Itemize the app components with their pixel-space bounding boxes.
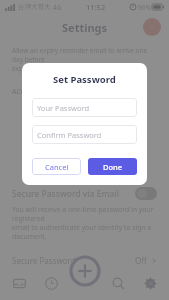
button[interactable]: Cancel xyxy=(32,158,81,175)
staticText: Secure Password via Email xyxy=(12,188,119,200)
staticText: 96% xyxy=(138,3,151,12)
button[interactable]: Done xyxy=(88,158,137,175)
button[interactable]: Profile xyxy=(143,18,161,36)
staticText: Done xyxy=(103,162,123,172)
staticText: You will receive a one-time password in … xyxy=(12,205,157,241)
staticText: 台灣大哥大 xyxy=(18,3,51,11)
button[interactable]: Recent xyxy=(38,268,64,298)
staticText: Secure Password xyxy=(12,255,76,266)
staticText: Off xyxy=(135,255,147,266)
button[interactable]: Search xyxy=(105,268,131,298)
button[interactable]: Your Password xyxy=(37,98,137,117)
button[interactable]: Inbox xyxy=(6,268,32,298)
staticText: 4G xyxy=(53,3,62,12)
button[interactable]: Toggle secure password xyxy=(135,187,157,200)
staticText: Set Password xyxy=(53,73,116,86)
button[interactable]: Add xyxy=(70,256,100,286)
staticText: Cancel xyxy=(45,162,69,172)
button[interactable]: Settings xyxy=(137,268,163,298)
staticText: Allow an expiry reminder email to arrive… xyxy=(12,46,157,73)
staticText: Confirm Password xyxy=(37,130,102,140)
staticText: 11:52 xyxy=(86,2,106,12)
staticText: Your Password xyxy=(37,103,90,113)
staticText: Settings xyxy=(62,20,108,35)
staticText: ACCOUNT xyxy=(12,87,46,97)
button[interactable]: Confirm Password xyxy=(37,125,137,144)
